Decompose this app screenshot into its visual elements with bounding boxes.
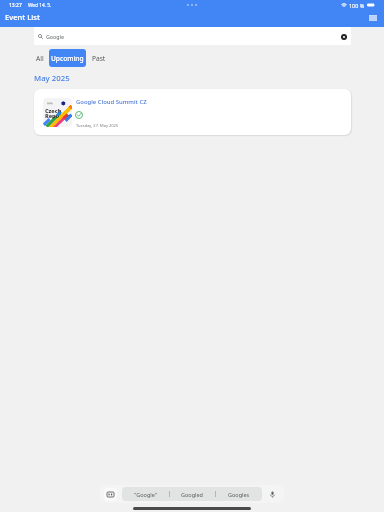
staticText: Wed 14. 5. [28,2,52,9]
staticText: Past [92,54,106,63]
button[interactable]: Upcoming [49,49,86,67]
staticText: 100 % [349,2,365,9]
button[interactable]: Switch keyboard [104,488,117,501]
staticText: Googles [228,491,250,498]
button[interactable]: Past [88,49,110,67]
staticText: Event List [5,12,40,22]
staticText: Google Cloud Summit CZ [76,98,147,106]
button[interactable]: Clear search [341,34,347,40]
staticText: Republic [45,112,70,119]
staticText: 13:27 [9,2,22,9]
button[interactable]: Voice input [265,487,279,501]
staticText: Czech [45,107,62,114]
button[interactable]: Google [34,27,351,45]
button[interactable]: Menu [366,11,379,24]
staticText: Upcoming [51,54,84,63]
staticText: All [36,54,44,63]
button[interactable]: Czech [34,89,351,135]
button[interactable]: All [32,49,48,67]
staticText: Tuesday, 27. May 2025 [76,123,119,128]
staticText: Googled [181,491,203,498]
staticText: May 2025 [34,73,70,84]
staticText: "Google" [134,491,157,498]
staticText: Google [46,33,64,40]
